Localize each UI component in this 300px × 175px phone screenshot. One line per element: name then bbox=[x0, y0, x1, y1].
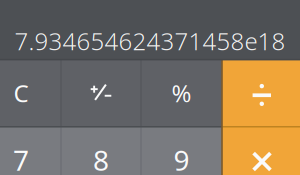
staticText: 7.934654624371458e18 bbox=[14, 25, 285, 57]
staticText: C bbox=[13, 77, 28, 109]
button[interactable]: Multiply bbox=[222, 127, 300, 175]
button[interactable]: Plus minus bbox=[61, 60, 141, 126]
button[interactable]: 8 bbox=[61, 127, 141, 175]
button[interactable]: Percent bbox=[141, 60, 222, 126]
button[interactable]: 7 bbox=[0, 127, 61, 175]
button[interactable]: Divide bbox=[222, 60, 300, 126]
staticText: 9 bbox=[173, 141, 189, 175]
staticText: 7 bbox=[13, 141, 29, 175]
staticText: 8 bbox=[93, 141, 109, 175]
button[interactable]: Clear bbox=[0, 60, 61, 126]
staticText: % bbox=[171, 77, 191, 109]
button[interactable]: 9 bbox=[141, 127, 222, 175]
